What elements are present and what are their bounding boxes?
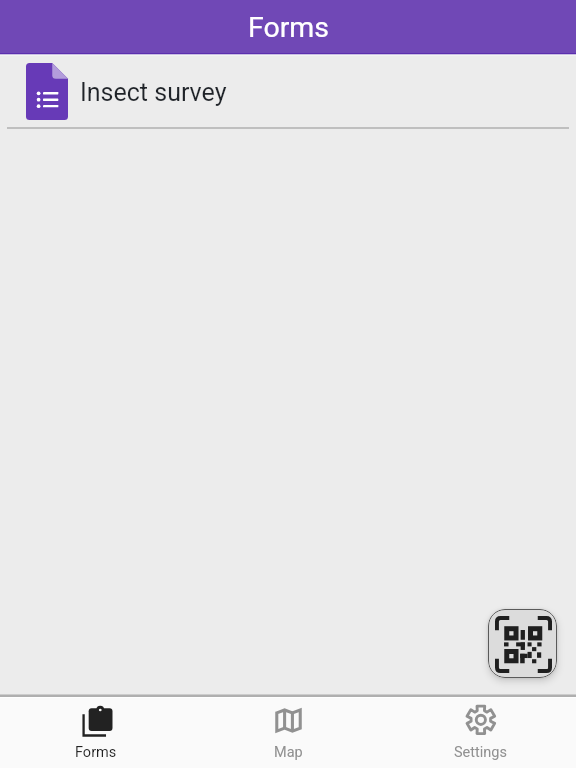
button[interactable]: Forms bbox=[0, 698, 192, 768]
button[interactable]: Insect survey bbox=[0, 56, 576, 127]
other: Map bbox=[271, 702, 305, 736]
button[interactable]: Settings bbox=[384, 698, 576, 768]
button[interactable]: Map bbox=[192, 698, 384, 768]
button[interactable]: Scan QR code bbox=[488, 609, 557, 678]
staticText: Map bbox=[274, 744, 303, 761]
staticText: Forms bbox=[248, 11, 330, 44]
staticText: Forms bbox=[75, 744, 117, 761]
other: Settings bbox=[463, 702, 497, 736]
other: Forms bbox=[79, 702, 113, 736]
staticText: Settings bbox=[454, 744, 507, 761]
staticText: Insect survey bbox=[80, 78, 227, 107]
